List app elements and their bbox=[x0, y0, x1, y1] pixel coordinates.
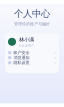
button[interactable]: 消息通知 bbox=[5, 55, 59, 60]
staticText: > bbox=[54, 50, 56, 55]
button[interactable]: 隐私设置 bbox=[5, 60, 59, 65]
staticText: > bbox=[54, 60, 56, 65]
staticText: 消息通知 bbox=[13, 55, 29, 60]
staticText: 林小满 bbox=[19, 36, 34, 43]
staticText: > bbox=[54, 55, 56, 60]
staticText: 已认证用户 bbox=[19, 44, 34, 47]
staticText: 账户安全 bbox=[13, 50, 29, 55]
staticText: 隐私设置 bbox=[13, 60, 29, 65]
staticText: 管理你的账户与偏好 bbox=[14, 21, 50, 26]
button[interactable]: 账户安全 bbox=[5, 50, 59, 55]
staticText: 个人中心 bbox=[14, 8, 50, 19]
